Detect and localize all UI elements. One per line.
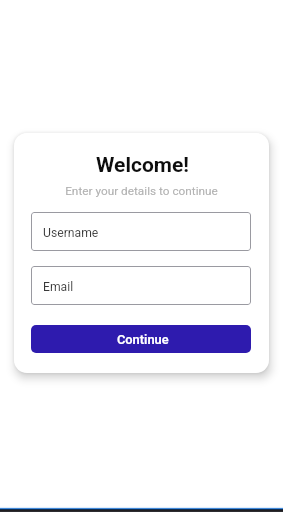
button[interactable]: Username	[31, 212, 251, 251]
staticText: Enter your details to continue	[65, 184, 218, 198]
button[interactable]: Email	[31, 266, 251, 305]
staticText: Continue	[117, 332, 169, 347]
staticText: Welcome!	[96, 153, 189, 178]
staticText: Email	[43, 280, 74, 294]
button[interactable]: Continue	[31, 325, 251, 353]
staticText: Username	[43, 226, 99, 240]
